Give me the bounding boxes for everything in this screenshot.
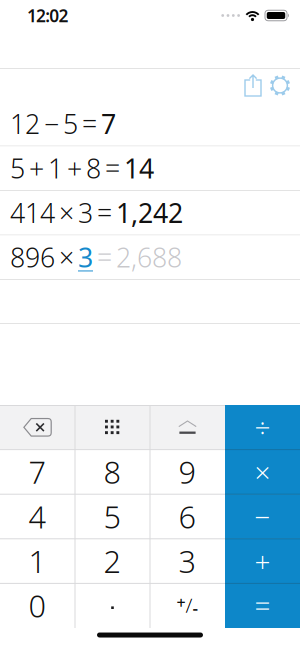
button[interactable]: Share bbox=[244, 74, 262, 97]
button[interactable]: Equals bbox=[225, 583, 300, 628]
staticText: 5 bbox=[103, 496, 121, 537]
button[interactable]: 12 − 5 = 7 bbox=[0, 102, 300, 145]
staticText: 3 bbox=[78, 239, 93, 275]
button[interactable]: Divide bbox=[225, 405, 300, 450]
button[interactable]: 8 bbox=[75, 450, 150, 494]
staticText: 2 bbox=[103, 541, 121, 581]
button[interactable]: 0 bbox=[0, 583, 75, 628]
button[interactable]: 414 × 3 = 1,242 bbox=[0, 191, 300, 234]
staticText: = 2,688 bbox=[93, 239, 182, 275]
staticText: 4 bbox=[28, 496, 46, 537]
button[interactable]: 1 bbox=[0, 539, 75, 583]
staticText: − bbox=[254, 498, 270, 535]
staticText: 896 × bbox=[10, 239, 78, 275]
staticText: 12 − 5 = 7 bbox=[10, 106, 116, 141]
button[interactable]: Add bbox=[225, 539, 300, 583]
staticText: 414 × 3 = 1,242 bbox=[10, 195, 183, 230]
button[interactable]: Decimal point bbox=[75, 583, 150, 628]
button[interactable]: Plus minus bbox=[150, 583, 225, 628]
staticText: 1 bbox=[28, 541, 46, 581]
button[interactable]: 5 + 1 + 8 = 14 bbox=[0, 146, 300, 190]
staticText: ÷ bbox=[254, 409, 270, 446]
button[interactable]: 3 bbox=[150, 539, 225, 583]
staticText: + bbox=[254, 542, 270, 580]
button[interactable]: Keypad bbox=[75, 405, 150, 450]
staticText: 9 bbox=[178, 451, 196, 492]
staticText: 5 + 1 + 8 = 14 bbox=[10, 150, 154, 186]
button[interactable]: 4 bbox=[0, 494, 75, 539]
staticText: 0 bbox=[28, 585, 46, 626]
button[interactable]: 2 bbox=[75, 539, 150, 583]
button[interactable]: 9 bbox=[150, 450, 225, 494]
button[interactable]: 6 bbox=[150, 494, 225, 539]
button[interactable]: 5 bbox=[75, 494, 150, 539]
staticText: 7 bbox=[28, 451, 46, 492]
button[interactable]: Subtract bbox=[225, 494, 300, 539]
button[interactable]: 7 bbox=[0, 450, 75, 494]
button[interactable]: Multiply bbox=[225, 450, 300, 494]
button[interactable]: 896 × bbox=[0, 235, 300, 279]
staticText: 3 bbox=[178, 541, 196, 581]
staticText: 8 bbox=[103, 451, 121, 492]
staticText: = bbox=[254, 587, 270, 624]
button[interactable]: Hide keyboard bbox=[150, 405, 225, 450]
staticText: +/- bbox=[176, 592, 198, 620]
button[interactable]: Settings bbox=[269, 74, 291, 96]
button[interactable]: Delete bbox=[0, 405, 75, 450]
staticText: × bbox=[254, 453, 270, 490]
staticText: 12:02 bbox=[27, 4, 68, 27]
staticText: 6 bbox=[178, 496, 196, 537]
